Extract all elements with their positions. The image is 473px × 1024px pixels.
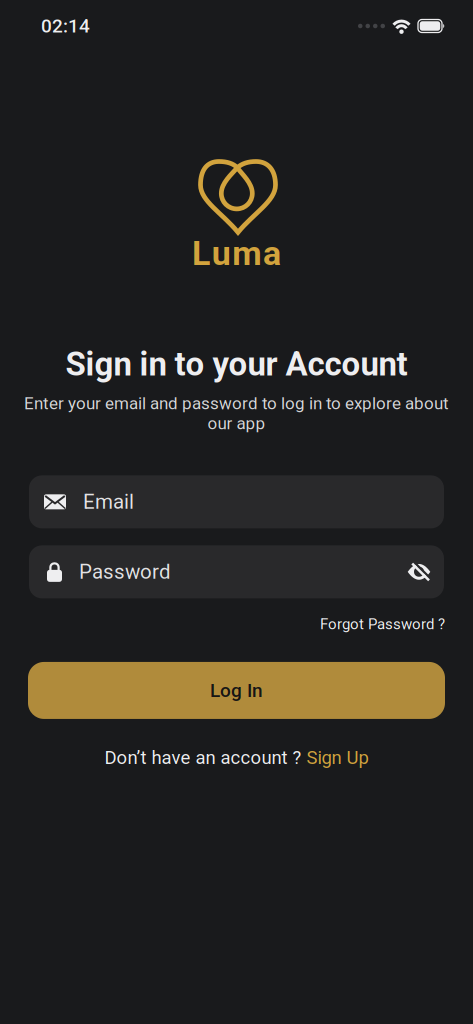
staticText: Luma (192, 233, 281, 273)
staticText: Sign Up (306, 747, 368, 769)
button[interactable]: Show password (407, 563, 444, 580)
button[interactable]: Password (29, 545, 444, 598)
staticText: Don’t have an account ? (104, 747, 306, 769)
staticText: Password (79, 560, 171, 584)
staticText: Email (83, 490, 134, 514)
staticText: 02:14 (41, 15, 90, 37)
staticText: Enter your email and password to log in … (24, 393, 449, 413)
button[interactable]: Forgot Password ? (320, 615, 445, 633)
staticText: Log In (210, 679, 263, 702)
button[interactable]: Email (29, 475, 444, 528)
staticText: our app (207, 413, 265, 433)
staticText: Sign in to your Account (65, 345, 407, 383)
staticText: Forgot Password ? (320, 615, 445, 633)
button[interactable]: Sign Up (306, 747, 368, 769)
button[interactable]: Log In (28, 662, 445, 719)
